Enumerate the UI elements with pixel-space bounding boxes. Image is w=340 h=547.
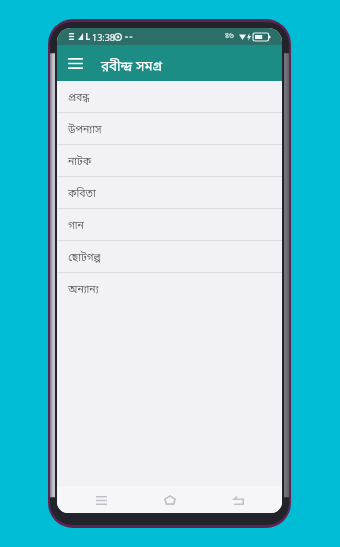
staticText: ৪৬ (225, 31, 234, 40)
staticText: 13:38 (92, 31, 116, 43)
button[interactable]: অন্যান্য (57, 273, 282, 304)
staticText: গান (68, 219, 84, 233)
button[interactable]: উপন্যাস (57, 113, 282, 144)
button[interactable]: Open navigation menu (62, 50, 88, 76)
button[interactable]: Back (226, 488, 250, 512)
staticText: ছোটগল্প (68, 251, 101, 265)
staticText: প্রবন্ধ (68, 91, 90, 105)
button[interactable]: কবিতা (57, 177, 282, 208)
staticText: রবীন্দ্র সমগ্র (101, 59, 162, 77)
button[interactable]: ছোটগল্প (57, 241, 282, 272)
staticText: নাটক (68, 155, 92, 169)
button[interactable]: নাটক (57, 145, 282, 176)
staticText: কবিতা (68, 187, 96, 201)
button[interactable]: গান (57, 209, 282, 240)
button[interactable]: প্রবন্ধ (57, 81, 282, 112)
button[interactable]: Home (158, 488, 182, 512)
staticText: অন্যান্য (68, 283, 99, 297)
staticText: উপন্যাস (68, 123, 102, 137)
button[interactable]: Recent apps (89, 488, 113, 512)
